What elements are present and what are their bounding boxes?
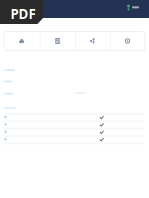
button[interactable]: PDF document tab [0,0,43,24]
button[interactable]: Table row 2 [4,122,144,128]
button[interactable]: Table row 1 [4,115,144,120]
button[interactable]: Documents [40,31,75,50]
button[interactable]: Table row 3 [4,130,144,135]
button[interactable]: Share [75,31,110,50]
button[interactable]: Organisation [127,5,141,13]
button[interactable]: Settings [110,31,145,50]
button[interactable]: Upload [4,31,39,50]
button[interactable]: Table row 4 [4,137,144,142]
staticText: PDF [10,5,35,23]
